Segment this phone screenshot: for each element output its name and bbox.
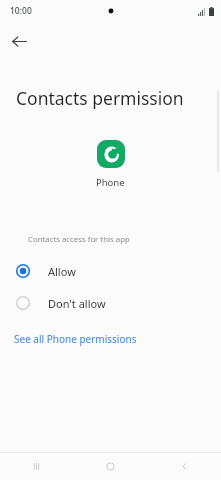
staticText: Phone — [96, 176, 125, 189]
staticText: Allow — [48, 264, 76, 279]
button[interactable]: Allow — [0, 255, 221, 287]
staticText: Contacts permission — [16, 86, 184, 110]
button[interactable]: See all Phone permissions — [0, 325, 221, 353]
button[interactable]: Back — [0, 22, 38, 60]
staticText: 10:00 — [10, 5, 32, 17]
staticText: Contacts access for this app — [28, 234, 130, 245]
button[interactable]: Recent apps — [0, 453, 73, 480]
staticText: Don't allow — [48, 296, 106, 311]
button[interactable]: Don't allow — [0, 287, 221, 319]
staticText: See all Phone permissions — [14, 332, 137, 346]
button[interactable]: Home — [73, 453, 147, 480]
